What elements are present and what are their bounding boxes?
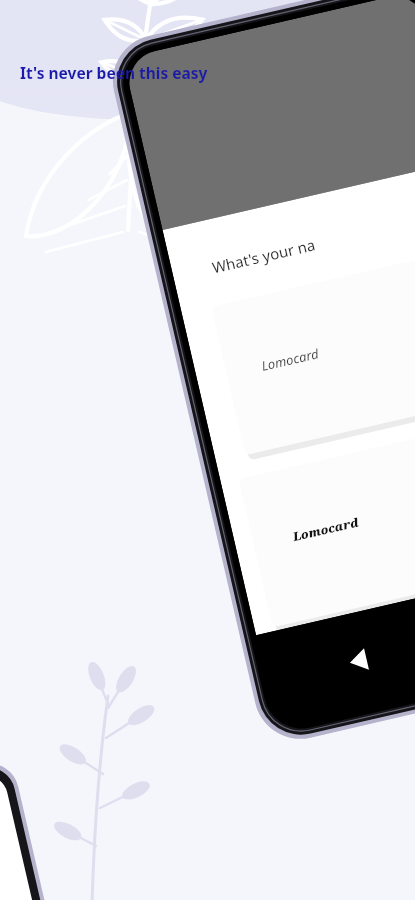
button[interactable]: It's never been this easy onboarding [0, 0, 415, 900]
